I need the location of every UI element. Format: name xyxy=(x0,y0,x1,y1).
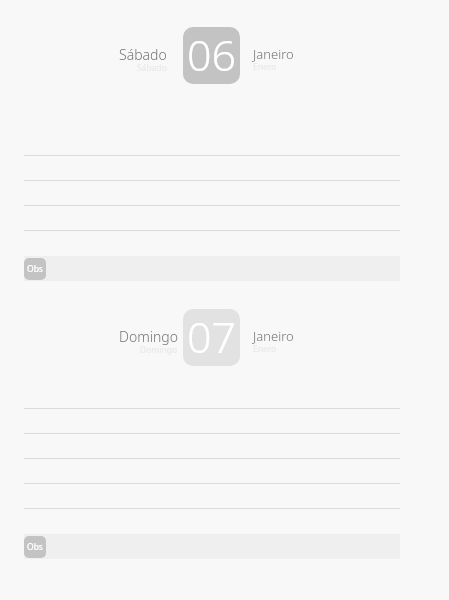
staticText: Sábado xyxy=(119,45,167,64)
button[interactable]: Obs xyxy=(24,256,400,281)
button[interactable]: Escrever xyxy=(24,434,400,459)
button[interactable]: Janeiro xyxy=(253,327,294,357)
button[interactable]: 06 xyxy=(183,27,240,84)
staticText: Sábado xyxy=(137,62,167,74)
button[interactable]: Escrever xyxy=(24,484,400,509)
button[interactable]: Janeiro xyxy=(253,45,294,75)
button[interactable]: Escrever xyxy=(24,156,400,181)
staticText: Enero xyxy=(253,343,277,355)
button[interactable]: Domingo xyxy=(119,327,178,358)
button[interactable]: Sábado xyxy=(119,45,167,76)
staticText: Janeiro xyxy=(253,327,294,345)
button[interactable]: 07 xyxy=(183,309,240,366)
staticText: 06 xyxy=(187,27,237,82)
button[interactable]: Escrever xyxy=(24,459,400,484)
staticText: Obs xyxy=(27,541,43,553)
button[interactable]: Escrever xyxy=(24,131,400,156)
button[interactable]: Escrever xyxy=(24,384,400,409)
button[interactable]: Escrever xyxy=(24,409,400,434)
staticText: 07 xyxy=(187,309,237,364)
staticText: Obs xyxy=(27,263,43,275)
staticText: Janeiro xyxy=(253,45,294,63)
staticText: Enero xyxy=(253,61,277,73)
staticText: Domingo xyxy=(140,344,178,356)
button[interactable]: Obs xyxy=(24,534,400,559)
button[interactable]: Escrever xyxy=(24,181,400,206)
staticText: Domingo xyxy=(119,327,178,346)
button[interactable]: Escrever xyxy=(24,206,400,231)
